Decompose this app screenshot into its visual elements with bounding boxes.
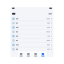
button[interactable]: Tab	[32, 51, 39, 58]
button[interactable]: Tab	[25, 51, 32, 58]
button[interactable]	[10, 47, 53, 51]
button[interactable]: Tab	[17, 51, 25, 58]
button[interactable]	[10, 43, 53, 47]
button[interactable]	[10, 21, 53, 25]
button[interactable]	[10, 17, 53, 21]
button[interactable]	[10, 38, 53, 42]
button[interactable]	[10, 25, 53, 29]
button[interactable]	[10, 30, 53, 34]
button[interactable]: Tab	[39, 51, 46, 58]
button[interactable]	[10, 34, 53, 38]
